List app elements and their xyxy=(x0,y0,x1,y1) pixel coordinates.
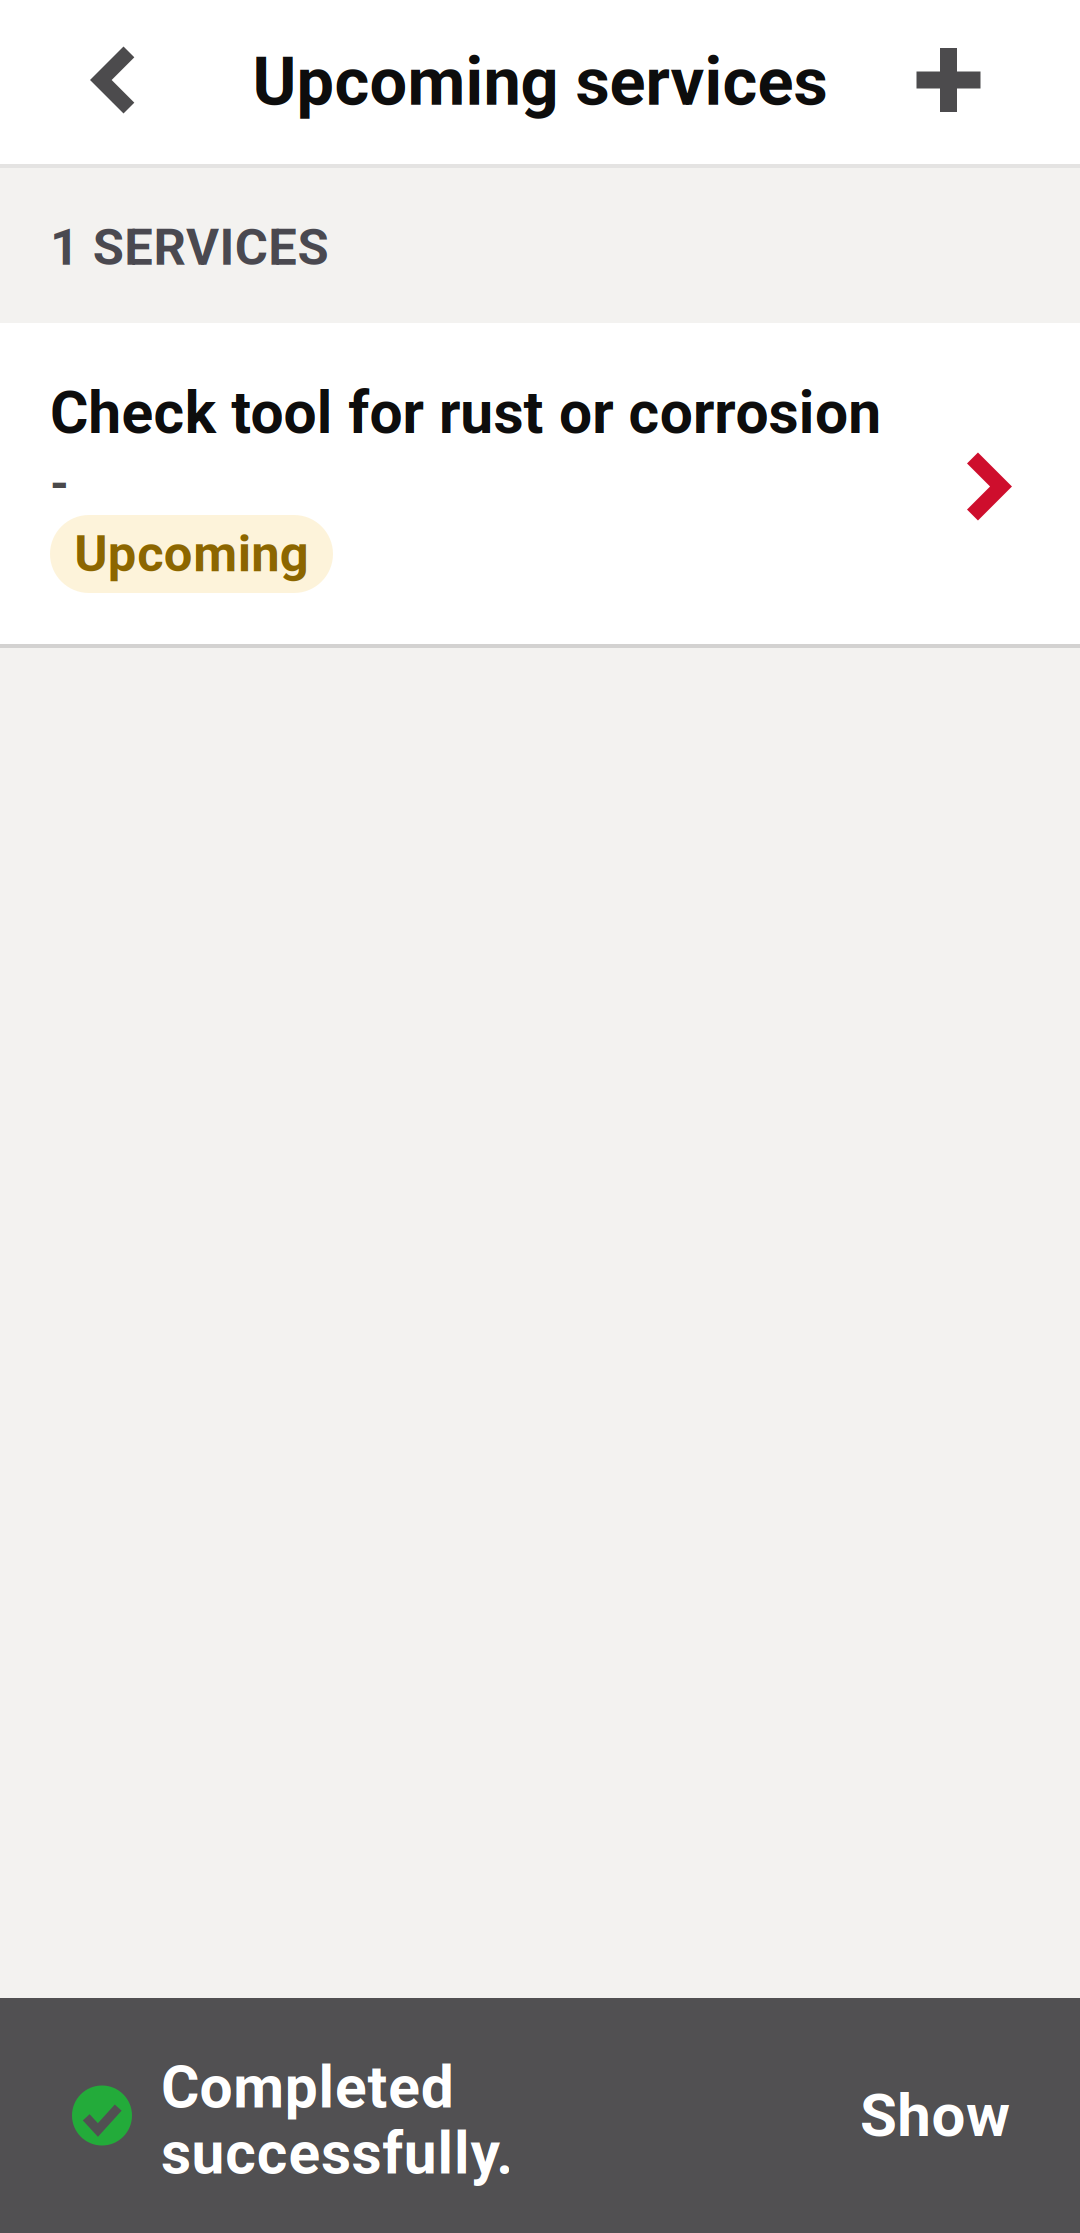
staticText: Upcoming services xyxy=(252,43,827,121)
staticText: Completed xyxy=(161,2053,454,2122)
button[interactable]: Back xyxy=(0,0,225,164)
staticText: successfully. xyxy=(161,2119,513,2188)
staticText: Show xyxy=(860,2080,1010,2151)
staticText: 1 SERVICES xyxy=(50,218,329,277)
staticText: Check tool for rust or corrosion xyxy=(50,379,881,447)
staticText: - xyxy=(50,455,69,512)
button[interactable]: Add service xyxy=(815,0,1080,164)
button[interactable]: Check tool for rust or corrosion xyxy=(0,323,1080,644)
button[interactable]: Upcoming services xyxy=(0,0,1080,164)
button[interactable]: Show xyxy=(838,2056,1042,2174)
staticText: Upcoming xyxy=(74,524,309,584)
